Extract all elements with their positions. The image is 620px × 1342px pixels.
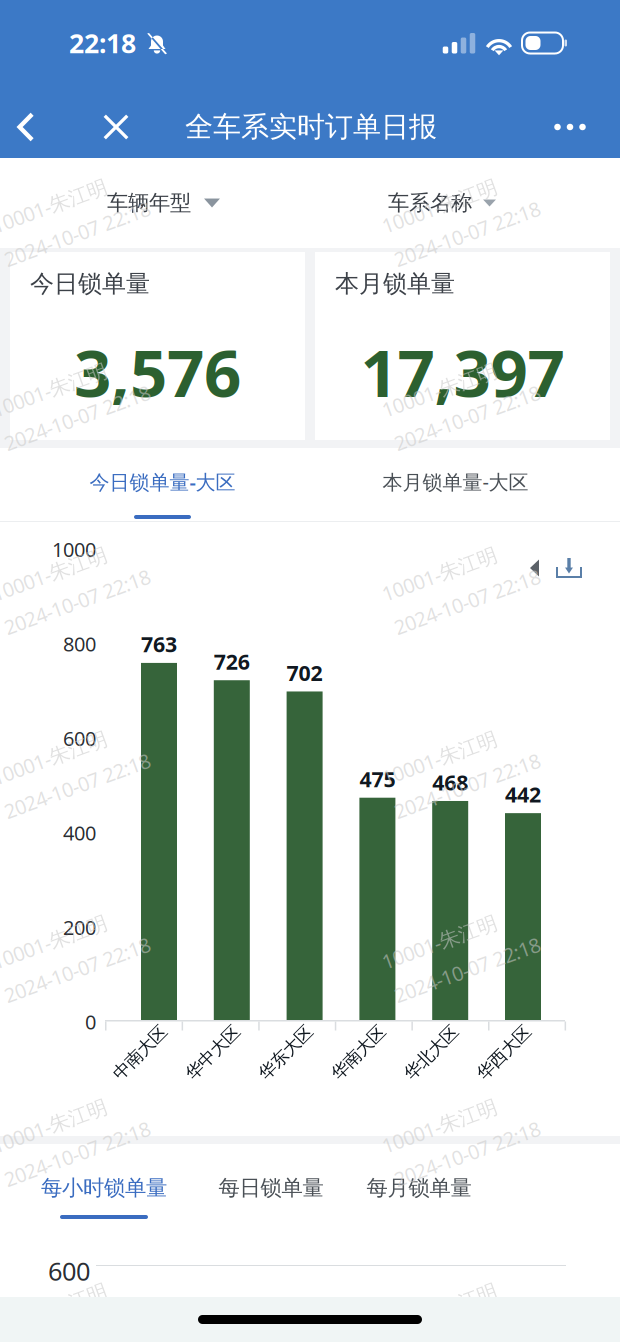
- staticText: 华西大区: [470, 1042, 538, 1063]
- staticText: 10001-朱江明: [384, 738, 505, 765]
- button[interactable]: 关闭: [92, 96, 140, 158]
- button[interactable]: 本月锁单量-大区: [325, 448, 586, 521]
- staticText: 2024-10-07 22:18: [0, 406, 148, 432]
- staticText: 487: [407, 1306, 458, 1342]
- staticText: 每日锁单量: [218, 1175, 323, 1201]
- staticText: 今日锁单量: [30, 269, 150, 298]
- staticText: 2024-10-07 22:18: [0, 590, 148, 616]
- staticText: 726: [214, 647, 250, 675]
- button[interactable]: 导出: [539, 540, 599, 596]
- staticText: 475: [359, 765, 395, 793]
- staticText: 200: [63, 914, 96, 941]
- staticText: 442: [505, 780, 541, 808]
- staticText: 3,576: [74, 328, 241, 415]
- staticText: 10001-朱江明: [0, 1106, 115, 1133]
- staticText: 2024-10-07 22:18: [384, 406, 538, 432]
- staticText: 600: [63, 725, 96, 752]
- button[interactable]: 车系名称: [378, 158, 506, 248]
- button[interactable]: 每月锁单量: [345, 1144, 493, 1236]
- staticText: 10001-朱江明: [384, 186, 505, 213]
- button[interactable]: 更多: [543, 96, 597, 158]
- staticText: 10001-朱江明: [0, 554, 115, 581]
- staticText: 17,397: [360, 328, 564, 415]
- button[interactable]: 车辆年型: [97, 158, 230, 248]
- staticText: 10001-朱江明: [0, 922, 115, 949]
- staticText: 10001-朱江明: [384, 370, 505, 397]
- staticText: 华东大区: [252, 1042, 320, 1063]
- staticText: 22:18: [69, 25, 136, 61]
- staticText: 10001-朱江明: [384, 922, 505, 949]
- staticText: 华北大区: [397, 1042, 465, 1063]
- button[interactable]: 返回: [1, 96, 49, 158]
- button[interactable]: 今日锁单量-大区: [0, 448, 325, 521]
- staticText: 400: [63, 819, 96, 846]
- staticText: 2024-10-07 22:18: [384, 774, 538, 800]
- staticText: 0: [85, 1008, 96, 1035]
- staticText: 2024-10-07 22:18: [0, 222, 148, 248]
- staticText: 中南大区: [106, 1042, 174, 1063]
- button[interactable]: 每日锁单量: [197, 1144, 345, 1236]
- staticText: 全车系实时订单日报: [185, 110, 437, 144]
- staticText: 10001-朱江明: [0, 370, 115, 397]
- staticText: 华南大区: [324, 1042, 392, 1063]
- staticText: 10001-朱江明: [384, 554, 505, 581]
- staticText: 10001-朱江明: [0, 738, 115, 765]
- staticText: 车系名称: [388, 190, 472, 216]
- staticText: 车辆年型: [107, 190, 191, 216]
- staticText: 800: [63, 630, 96, 657]
- staticText: 本月锁单量-大区: [382, 468, 528, 495]
- staticText: 702: [287, 658, 323, 687]
- staticText: 今日锁单量-大区: [89, 468, 235, 495]
- staticText: 2024-10-07 22:18: [0, 774, 148, 800]
- staticText: 763: [141, 630, 177, 658]
- staticText: 华中大区: [179, 1042, 247, 1063]
- staticText: 468: [432, 768, 468, 796]
- staticText: 600: [48, 1254, 90, 1288]
- staticText: 10001-朱江明: [384, 1290, 505, 1317]
- staticText: 2024-10-07 22:18: [0, 1142, 148, 1168]
- staticText: 每小时锁单量: [41, 1175, 167, 1201]
- staticText: 本月锁单量: [335, 269, 455, 298]
- staticText: 2024-10-07 22:18: [384, 590, 538, 616]
- staticText: 2024-10-07 22:18: [384, 958, 538, 984]
- staticText: 每月锁单量: [366, 1175, 471, 1201]
- staticText: 2024-10-07 22:18: [384, 222, 538, 248]
- staticText: 10001-朱江明: [0, 186, 115, 213]
- staticText: 2024-10-07 22:18: [384, 1142, 538, 1168]
- staticText: 1000: [52, 536, 96, 563]
- button[interactable]: 每小时锁单量: [11, 1144, 197, 1236]
- staticText: 10001-朱江明: [0, 1290, 115, 1317]
- staticText: 2024-10-07 22:18: [0, 958, 148, 984]
- staticText: 10001-朱江明: [384, 1106, 505, 1133]
